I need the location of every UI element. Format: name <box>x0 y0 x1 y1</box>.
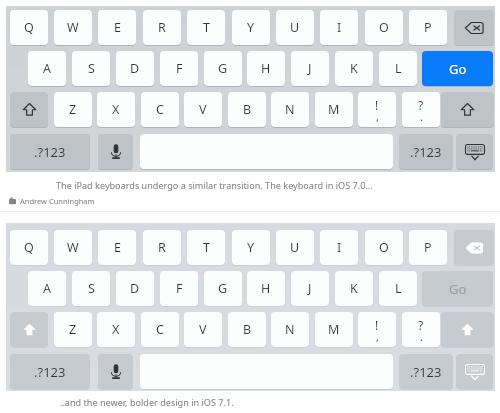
staticText: I <box>337 239 342 256</box>
staticText: V <box>199 101 207 118</box>
button[interactable]: R <box>143 230 181 265</box>
staticText: .?123 <box>410 363 442 381</box>
button[interactable]: V <box>184 312 222 347</box>
button[interactable]: A <box>28 271 66 306</box>
staticText: .?123 <box>34 363 66 381</box>
button[interactable]: G <box>204 51 242 86</box>
button[interactable]: E <box>98 10 136 45</box>
button[interactable]: G <box>204 271 242 306</box>
staticText: T <box>203 239 210 256</box>
staticText: . <box>420 109 423 124</box>
button[interactable]: Go <box>422 271 493 306</box>
button[interactable]: X <box>97 312 135 347</box>
button[interactable]: Dictate <box>98 354 133 389</box>
button[interactable]: X <box>97 92 135 127</box>
staticText: L <box>395 60 402 77</box>
button[interactable]: .?123 <box>10 134 90 169</box>
staticText: , <box>376 329 379 344</box>
button[interactable]: Hide keyboard <box>456 134 493 169</box>
staticText: O <box>379 19 389 36</box>
staticText: S <box>88 60 95 77</box>
button[interactable]: Q <box>10 230 48 265</box>
button[interactable]: B <box>228 312 266 347</box>
button[interactable]: S <box>72 51 110 86</box>
button[interactable]: K <box>335 271 373 306</box>
staticText: T <box>203 19 210 36</box>
button[interactable]: C <box>141 312 179 347</box>
button[interactable]: .?123 <box>399 134 453 169</box>
button[interactable]: Shift <box>10 92 48 127</box>
staticText: H <box>261 280 271 297</box>
button[interactable]: J <box>291 51 329 86</box>
button[interactable]: F <box>160 51 198 86</box>
button[interactable]: I <box>320 230 358 265</box>
button[interactable]: C <box>141 92 179 127</box>
button[interactable]: L <box>379 51 417 86</box>
staticText: W <box>67 239 79 256</box>
button[interactable]: V <box>184 92 222 127</box>
button[interactable]: J <box>291 271 329 306</box>
staticText: B <box>243 321 252 338</box>
button[interactable]: M <box>315 92 353 127</box>
button[interactable]: ? <box>402 92 440 127</box>
button[interactable]: ? <box>402 312 440 347</box>
button[interactable]: L <box>379 271 417 306</box>
button[interactable]: H <box>247 271 285 306</box>
button[interactable]: D <box>116 51 154 86</box>
staticText: X <box>112 321 120 338</box>
button[interactable]: H <box>247 51 285 86</box>
button[interactable]: T <box>187 10 225 45</box>
staticText: Z <box>69 321 77 338</box>
staticText: X <box>112 101 120 118</box>
button[interactable]: Backspace <box>454 10 494 45</box>
button[interactable]: Q <box>10 10 48 45</box>
button[interactable]: E <box>98 230 136 265</box>
button[interactable]: Go <box>422 51 493 86</box>
button[interactable]: R <box>143 10 181 45</box>
staticText: D <box>130 60 140 77</box>
button[interactable]: K <box>335 51 373 86</box>
button[interactable]: Z <box>54 92 92 127</box>
button[interactable]: I <box>320 10 358 45</box>
button[interactable]: O <box>365 10 403 45</box>
button[interactable]: W <box>54 230 92 265</box>
button[interactable]: .?123 <box>399 354 453 389</box>
button[interactable]: P <box>409 10 447 45</box>
button[interactable]: O <box>365 230 403 265</box>
button[interactable]: T <box>187 230 225 265</box>
button[interactable]: F <box>160 271 198 306</box>
button[interactable]: ! <box>358 312 396 347</box>
button[interactable]: B <box>228 92 266 127</box>
staticText: .?123 <box>410 143 442 161</box>
button[interactable]: Shift <box>10 312 48 347</box>
button[interactable]: Shift <box>441 92 494 127</box>
button[interactable]: U <box>276 230 314 265</box>
button[interactable]: Hide keyboard <box>456 354 493 389</box>
button[interactable]: Backspace <box>454 230 494 265</box>
button[interactable]: M <box>315 312 353 347</box>
button[interactable]: ! <box>358 92 396 127</box>
staticText: F <box>176 60 183 77</box>
staticText: O <box>379 239 389 256</box>
button[interactable]: S <box>72 271 110 306</box>
staticText: W <box>67 19 79 36</box>
button[interactable]: P <box>409 230 447 265</box>
button[interactable]: N <box>271 312 309 347</box>
staticText: .?123 <box>34 143 66 161</box>
staticText: Y <box>247 19 255 36</box>
button[interactable]: Shift <box>441 312 494 347</box>
button[interactable]: W <box>54 10 92 45</box>
button[interactable]: U <box>276 10 314 45</box>
staticText: U <box>290 239 300 256</box>
button[interactable]: Y <box>232 10 270 45</box>
staticText: M <box>328 321 340 338</box>
button[interactable]: Z <box>54 312 92 347</box>
button[interactable]: .?123 <box>10 354 90 389</box>
button[interactable]: A <box>28 51 66 86</box>
button[interactable]: Y <box>232 230 270 265</box>
button[interactable]: N <box>271 92 309 127</box>
button[interactable]: Dictate <box>98 134 133 169</box>
button[interactable]: D <box>116 271 154 306</box>
